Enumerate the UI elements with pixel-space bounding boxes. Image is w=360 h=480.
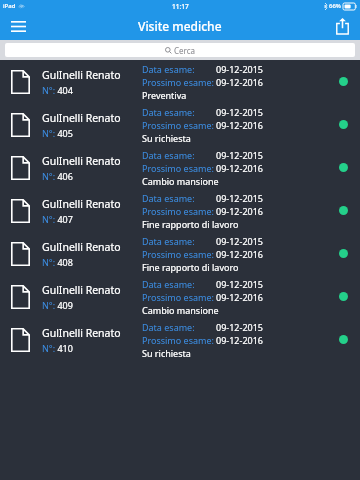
staticText: Visite mediche [138, 18, 222, 34]
staticText: GulInelli Renato [42, 240, 121, 254]
staticText: Preventiva [142, 89, 187, 101]
staticText: Prossimo esame: [142, 248, 216, 260]
staticText: Data esame: [142, 192, 216, 204]
button[interactable]: GulInelli Renato [0, 146, 360, 189]
staticText: Prossimo esame: [142, 119, 216, 131]
staticText: 66% [329, 2, 341, 10]
staticText: 09-12-2015 [216, 63, 263, 75]
staticText: Prossimo esame: [142, 162, 216, 174]
staticText: 09-12-2016 [216, 334, 263, 346]
staticText: N°: 408 [42, 256, 73, 268]
staticText: Fine rapporto di lavoro [142, 218, 239, 230]
staticText: Data esame: [142, 63, 216, 75]
staticText: GulInelli Renato [42, 283, 121, 297]
button[interactable]: GulInelli Renato [0, 232, 360, 275]
staticText: Prossimo esame: [142, 205, 216, 217]
staticText: Su richiesta [142, 347, 191, 359]
staticText: 09-12-2016 [216, 248, 263, 260]
staticText: 09-12-2016 [216, 119, 263, 131]
staticText: 09-12-2016 [216, 291, 263, 303]
button[interactable]: GulInelli Renato [0, 103, 360, 146]
button[interactable]: GulInelli Renato [0, 275, 360, 318]
staticText: GulInelli Renato [42, 111, 121, 125]
button[interactable]: GulInelli Renato [0, 189, 360, 232]
staticText: Cerca [174, 45, 196, 56]
staticText: 09-12-2015 [216, 235, 263, 247]
staticText: 09-12-2016 [216, 162, 263, 174]
staticText: Data esame: [142, 149, 216, 161]
staticText: N°: 405 [42, 127, 73, 139]
staticText: Prossimo esame: [142, 76, 216, 88]
staticText: Data esame: [142, 106, 216, 118]
staticText: GulInelli Renato [42, 326, 121, 340]
staticText: 09-12-2015 [216, 321, 263, 333]
staticText: 09-12-2015 [216, 149, 263, 161]
staticText: 09-12-2015 [216, 106, 263, 118]
staticText: N°: 406 [42, 170, 73, 182]
staticText: 09-12-2015 [216, 278, 263, 290]
staticText: Cambio mansione [142, 175, 219, 187]
staticText: 09-12-2016 [216, 205, 263, 217]
staticText: Su richiesta [142, 132, 191, 144]
button[interactable]: GulInelli Renato [0, 318, 360, 361]
staticText: N°: 409 [42, 299, 73, 311]
staticText: N°: 404 [42, 84, 73, 96]
staticText: Data esame: [142, 235, 216, 247]
staticText: Data esame: [142, 321, 216, 333]
staticText: Data esame: [142, 278, 216, 290]
staticText: Prossimo esame: [142, 334, 216, 346]
staticText: Prossimo esame: [142, 291, 216, 303]
staticText: N°: 407 [42, 213, 73, 225]
staticText: 11:17 [172, 2, 189, 11]
button[interactable]: Cerca [5, 43, 355, 57]
staticText: iPad [3, 2, 16, 10]
staticText: Cambio mansione [142, 304, 219, 316]
button[interactable]: Share [324, 12, 360, 40]
button[interactable]: GulInelli Renato [0, 60, 360, 103]
staticText: GulInelli Renato [42, 68, 121, 82]
staticText: Fine rapporto di lavoro [142, 261, 239, 273]
staticText: 09-12-2015 [216, 192, 263, 204]
staticText: N°: 410 [42, 342, 73, 354]
staticText: 09-12-2016 [216, 76, 263, 88]
staticText: GulInelli Renato [42, 154, 121, 168]
staticText: GulInelli Renato [42, 197, 121, 211]
button[interactable]: Menu [0, 12, 36, 40]
